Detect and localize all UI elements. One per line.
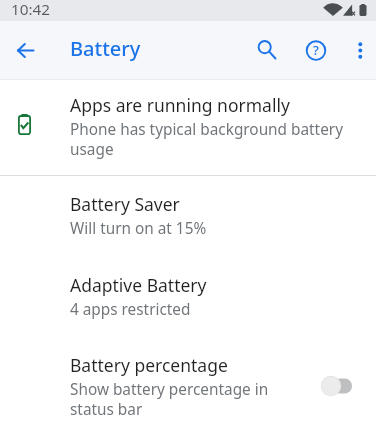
staticText: Apps are running normally bbox=[70, 93, 290, 117]
button[interactable]: Adaptive Battery bbox=[0, 257, 376, 337]
staticText: ? bbox=[313, 41, 319, 59]
button[interactable]: Back bbox=[1, 26, 49, 74]
button[interactable]: Search bbox=[243, 26, 291, 74]
button[interactable]: Help bbox=[292, 26, 340, 74]
button[interactable]: Battery Saver bbox=[0, 176, 376, 256]
staticText: Will turn on at 15% bbox=[70, 218, 207, 239]
staticText: Battery bbox=[70, 35, 141, 62]
button[interactable]: Battery percentage bbox=[0, 337, 376, 421]
button[interactable]: Apps are running normally bbox=[0, 79, 376, 175]
button[interactable]: More options bbox=[336, 26, 376, 74]
button[interactable]: Battery percentage toggle bbox=[312, 369, 362, 399]
staticText: 10:42 bbox=[11, 0, 51, 20]
staticText: 4 apps restricted bbox=[70, 299, 191, 320]
staticText: Phone has typical background battery usa… bbox=[70, 119, 362, 160]
staticText: Show battery percentage in status bar bbox=[70, 379, 285, 420]
staticText: Adaptive Battery bbox=[70, 273, 207, 297]
staticText: Battery Saver bbox=[70, 192, 180, 216]
staticText: Battery percentage bbox=[70, 353, 228, 377]
